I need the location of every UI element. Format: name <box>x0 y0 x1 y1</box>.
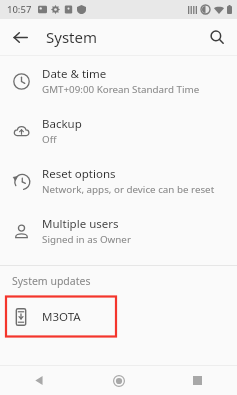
button[interactable]: Date & time <box>0 56 237 106</box>
staticText: Multiple users <box>42 216 119 232</box>
staticText: 10:57 <box>7 3 32 16</box>
staticText: Date & time <box>42 66 107 82</box>
staticText: Network, apps, or device can be reset <box>42 183 215 196</box>
staticText: Signed in as Owner <box>42 233 131 246</box>
button[interactable]: Search <box>203 23 231 51</box>
staticText: Reset options <box>42 166 116 182</box>
button[interactable]: Backup <box>0 106 237 156</box>
button[interactable]: M3OTA <box>0 296 237 338</box>
button[interactable]: Reset options <box>0 156 237 206</box>
staticText: System <box>46 27 97 47</box>
staticText: Off <box>42 133 57 146</box>
staticText: M3OTA <box>42 309 81 325</box>
button[interactable]: Home <box>79 366 158 395</box>
button[interactable]: Multiple users <box>0 206 237 256</box>
staticText: System updates <box>12 274 91 288</box>
staticText: Backup <box>42 116 82 132</box>
button[interactable]: Recent apps <box>158 366 237 395</box>
button[interactable]: Back <box>6 23 34 51</box>
staticText: GMT+09:00 Korean Standard Time <box>42 83 200 96</box>
button[interactable]: Back <box>0 366 79 395</box>
